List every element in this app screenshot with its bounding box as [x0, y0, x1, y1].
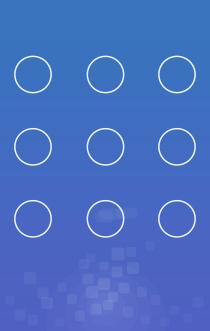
button[interactable]: Pattern dot 4 [15, 129, 51, 165]
button[interactable]: Pattern dot 9 [159, 201, 195, 237]
button[interactable]: Pattern dot 1 [15, 56, 51, 93]
button[interactable]: Pattern dot 8 [87, 201, 124, 237]
button[interactable]: Pattern dot 7 [15, 201, 51, 237]
button[interactable]: Pattern dot 3 [159, 56, 195, 93]
button[interactable]: Pattern dot 2 [87, 56, 124, 93]
button[interactable]: Pattern dot 6 [159, 129, 195, 165]
button[interactable]: Pattern dot 5 [87, 129, 124, 165]
